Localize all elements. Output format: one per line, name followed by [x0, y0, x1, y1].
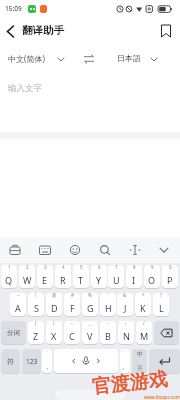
button[interactable]: ? [153, 293, 169, 316]
staticText: & [123, 292, 127, 298]
button[interactable]: 日本語 [115, 50, 161, 68]
button[interactable] [2, 22, 20, 40]
staticText: ~ [17, 292, 20, 298]
button[interactable] [82, 52, 96, 66]
staticText: 输入文字 [8, 83, 42, 94]
button[interactable]: 3 [37, 265, 53, 288]
button[interactable]: 6 [91, 265, 107, 288]
staticText: V [87, 330, 93, 342]
button[interactable]: · [120, 349, 130, 373]
staticText: J [124, 302, 127, 314]
button[interactable]: 分词 [1, 321, 26, 344]
staticText: M [140, 330, 149, 342]
button[interactable]: 2 [19, 265, 35, 288]
button[interactable]: _ [82, 321, 98, 344]
staticText: ， [44, 363, 50, 371]
staticText: R [60, 274, 66, 286]
staticText: F [70, 302, 75, 314]
staticText: ! [35, 292, 37, 298]
staticText: Q [5, 274, 13, 286]
staticText: G [87, 302, 94, 314]
staticText: 4 [62, 264, 65, 270]
staticText: W [23, 274, 32, 286]
staticText: % [88, 292, 92, 298]
staticText: N [123, 330, 130, 342]
staticText: X [51, 330, 57, 342]
staticText: 7 [115, 264, 118, 270]
staticText: Z [33, 330, 39, 342]
button[interactable]: @ [46, 293, 62, 316]
staticText: 5 [80, 264, 83, 270]
staticText: 1 [8, 264, 11, 270]
button[interactable]: ' [100, 293, 116, 316]
staticText: 。 [122, 363, 128, 371]
staticText: H [105, 302, 112, 314]
button[interactable] [54, 349, 118, 373]
button[interactable]: % [82, 293, 98, 316]
button[interactable]: ~ [10, 293, 26, 316]
button[interactable] [66, 241, 84, 259]
button[interactable]: 9 [144, 265, 160, 288]
button[interactable]: ) [46, 321, 62, 344]
staticText: C [69, 330, 75, 342]
button[interactable]: - [64, 321, 80, 344]
staticText: D [51, 302, 58, 314]
button[interactable]: 中文(简体) [6, 50, 66, 68]
staticText: 123 [26, 357, 38, 366]
button[interactable] [96, 241, 114, 259]
staticText: S [34, 302, 39, 314]
button[interactable]: ! [28, 293, 44, 316]
button[interactable]: ; [118, 321, 134, 344]
staticText: 9 [151, 264, 154, 270]
staticText: U [113, 274, 120, 286]
button[interactable]: # [64, 293, 80, 316]
staticText: @ [52, 292, 57, 298]
staticText: 日本語 [117, 53, 141, 63]
button[interactable]: * [135, 293, 151, 316]
staticText: · [124, 348, 126, 354]
button[interactable]: 符 [1, 349, 20, 373]
staticText: B [105, 330, 111, 342]
button[interactable]: · [42, 349, 52, 373]
button[interactable]: 4 [55, 265, 71, 288]
staticText: ' [107, 292, 109, 298]
staticText: * [142, 292, 145, 298]
staticText: · [46, 348, 48, 354]
staticText: 6 [98, 264, 101, 270]
button[interactable]: / [136, 321, 152, 344]
staticText: / [143, 320, 145, 326]
button[interactable] [36, 241, 54, 259]
staticText: Y [96, 274, 102, 286]
staticText: K [140, 302, 146, 314]
button[interactable]: ( [28, 321, 44, 344]
staticText: - [71, 320, 73, 326]
button[interactable]: 5 [73, 265, 89, 288]
staticText: 3 [44, 264, 47, 270]
button[interactable] [155, 241, 173, 259]
staticText: ? [160, 292, 162, 298]
staticText: # [71, 292, 74, 298]
staticText: L [159, 302, 164, 314]
button[interactable]: 0 [162, 265, 178, 288]
button[interactable]: 7 [108, 265, 124, 288]
staticText: P [167, 274, 173, 286]
button[interactable] [6, 241, 24, 259]
staticText: ( [35, 320, 37, 326]
button[interactable]: & [117, 293, 133, 316]
button[interactable]: 中 [132, 349, 147, 373]
button[interactable]: 8 [126, 265, 142, 288]
button[interactable] [126, 241, 144, 259]
staticText: E [42, 274, 48, 286]
button[interactable] [154, 321, 179, 344]
button[interactable] [158, 23, 174, 39]
staticText: 符 [7, 357, 14, 366]
button[interactable] [149, 349, 180, 373]
staticText: ; [125, 320, 127, 326]
button[interactable]: : [100, 321, 116, 344]
staticText: 官渡游戏 [91, 367, 169, 399]
staticText: 中文(简体) [8, 53, 45, 64]
staticText: 8 [133, 264, 136, 270]
button[interactable]: 1 [1, 265, 17, 288]
button[interactable]: 123 [22, 349, 41, 373]
staticText: 0 [169, 264, 172, 270]
